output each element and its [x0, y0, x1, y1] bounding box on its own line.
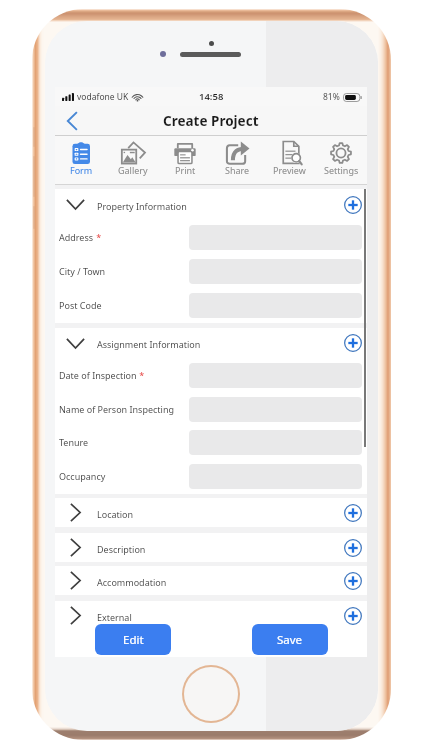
staticText: Post Code [59, 299, 102, 311]
button[interactable]: Save [252, 624, 328, 655]
staticText: Preview [273, 164, 306, 176]
button[interactable]: Add to External [342, 605, 364, 627]
staticText: 81% [323, 91, 340, 103]
staticText: City / Town [59, 265, 106, 277]
button[interactable]: Assignment Information [55, 328, 367, 358]
button[interactable]: Description [55, 533, 367, 562]
button[interactable]: Edit [95, 624, 171, 655]
button[interactable]: Form [55, 136, 107, 185]
button[interactable]: Add to Location [342, 502, 364, 524]
staticText: Occupancy [59, 470, 106, 482]
button[interactable]: Add to Accommodation [342, 570, 364, 592]
button[interactable]: Gallery [107, 136, 159, 185]
button[interactable]: Accommodation [55, 566, 367, 595]
staticText: Location [97, 508, 134, 520]
staticText: Form [70, 164, 93, 176]
button[interactable]: Add to Property Information [342, 194, 364, 216]
staticText: * [94, 231, 102, 243]
button[interactable]: Add to Assignment Information [342, 332, 364, 354]
button[interactable]: Property Information [55, 189, 367, 220]
button[interactable]: Settings [315, 136, 367, 185]
staticText: Date of Inspection [59, 369, 137, 381]
staticText: * [137, 369, 145, 381]
staticText: Create Project [163, 112, 259, 130]
button[interactable]: Back [55, 106, 97, 136]
staticText: 14:58 [199, 90, 224, 103]
staticText: Share [225, 164, 250, 176]
staticText: Description [97, 543, 146, 555]
staticText: Name of Person Inspecting [59, 403, 175, 415]
button[interactable]: Add to Description [342, 537, 364, 559]
staticText: Address [59, 231, 94, 243]
button[interactable]: Print [159, 136, 211, 185]
staticText: Edit [123, 632, 144, 648]
button[interactable]: Location [55, 498, 367, 527]
staticText: Gallery [118, 164, 148, 176]
staticText: Property Information [97, 200, 187, 212]
staticText: Assignment Information [97, 338, 201, 350]
button[interactable]: Share [211, 136, 263, 185]
staticText: vodafone UK [77, 91, 129, 103]
staticText: Save [277, 632, 303, 648]
staticText: Print [175, 164, 196, 176]
staticText: Accommodation [97, 576, 167, 588]
staticText: External [97, 611, 132, 623]
button[interactable]: Preview [263, 136, 315, 185]
staticText: Tenure [59, 436, 89, 448]
staticText: Settings [324, 164, 359, 176]
button[interactable]: External [55, 601, 367, 630]
